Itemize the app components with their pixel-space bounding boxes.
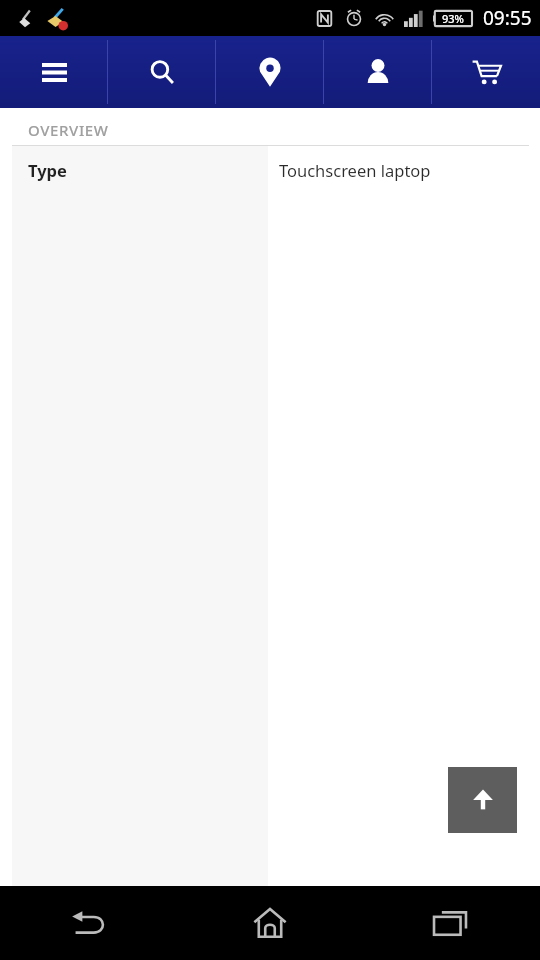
button[interactable]: Recents [360,886,540,960]
button[interactable]: Scroll to top [448,767,517,833]
button[interactable]: Search [108,36,216,108]
button[interactable]: Back [0,886,180,960]
staticText: Touchscreen laptop [279,159,431,181]
staticText: 93% [442,11,464,26]
button[interactable]: Type [12,146,529,886]
button[interactable]: Cart [432,36,540,108]
button[interactable]: Home [180,886,360,960]
button[interactable]: Stores [216,36,324,108]
staticText: 09:55 [483,5,532,31]
button[interactable]: Account [324,36,432,108]
staticText: OVERVIEW [28,120,109,140]
button[interactable]: Menu [0,36,108,108]
staticText: Type [28,159,67,181]
